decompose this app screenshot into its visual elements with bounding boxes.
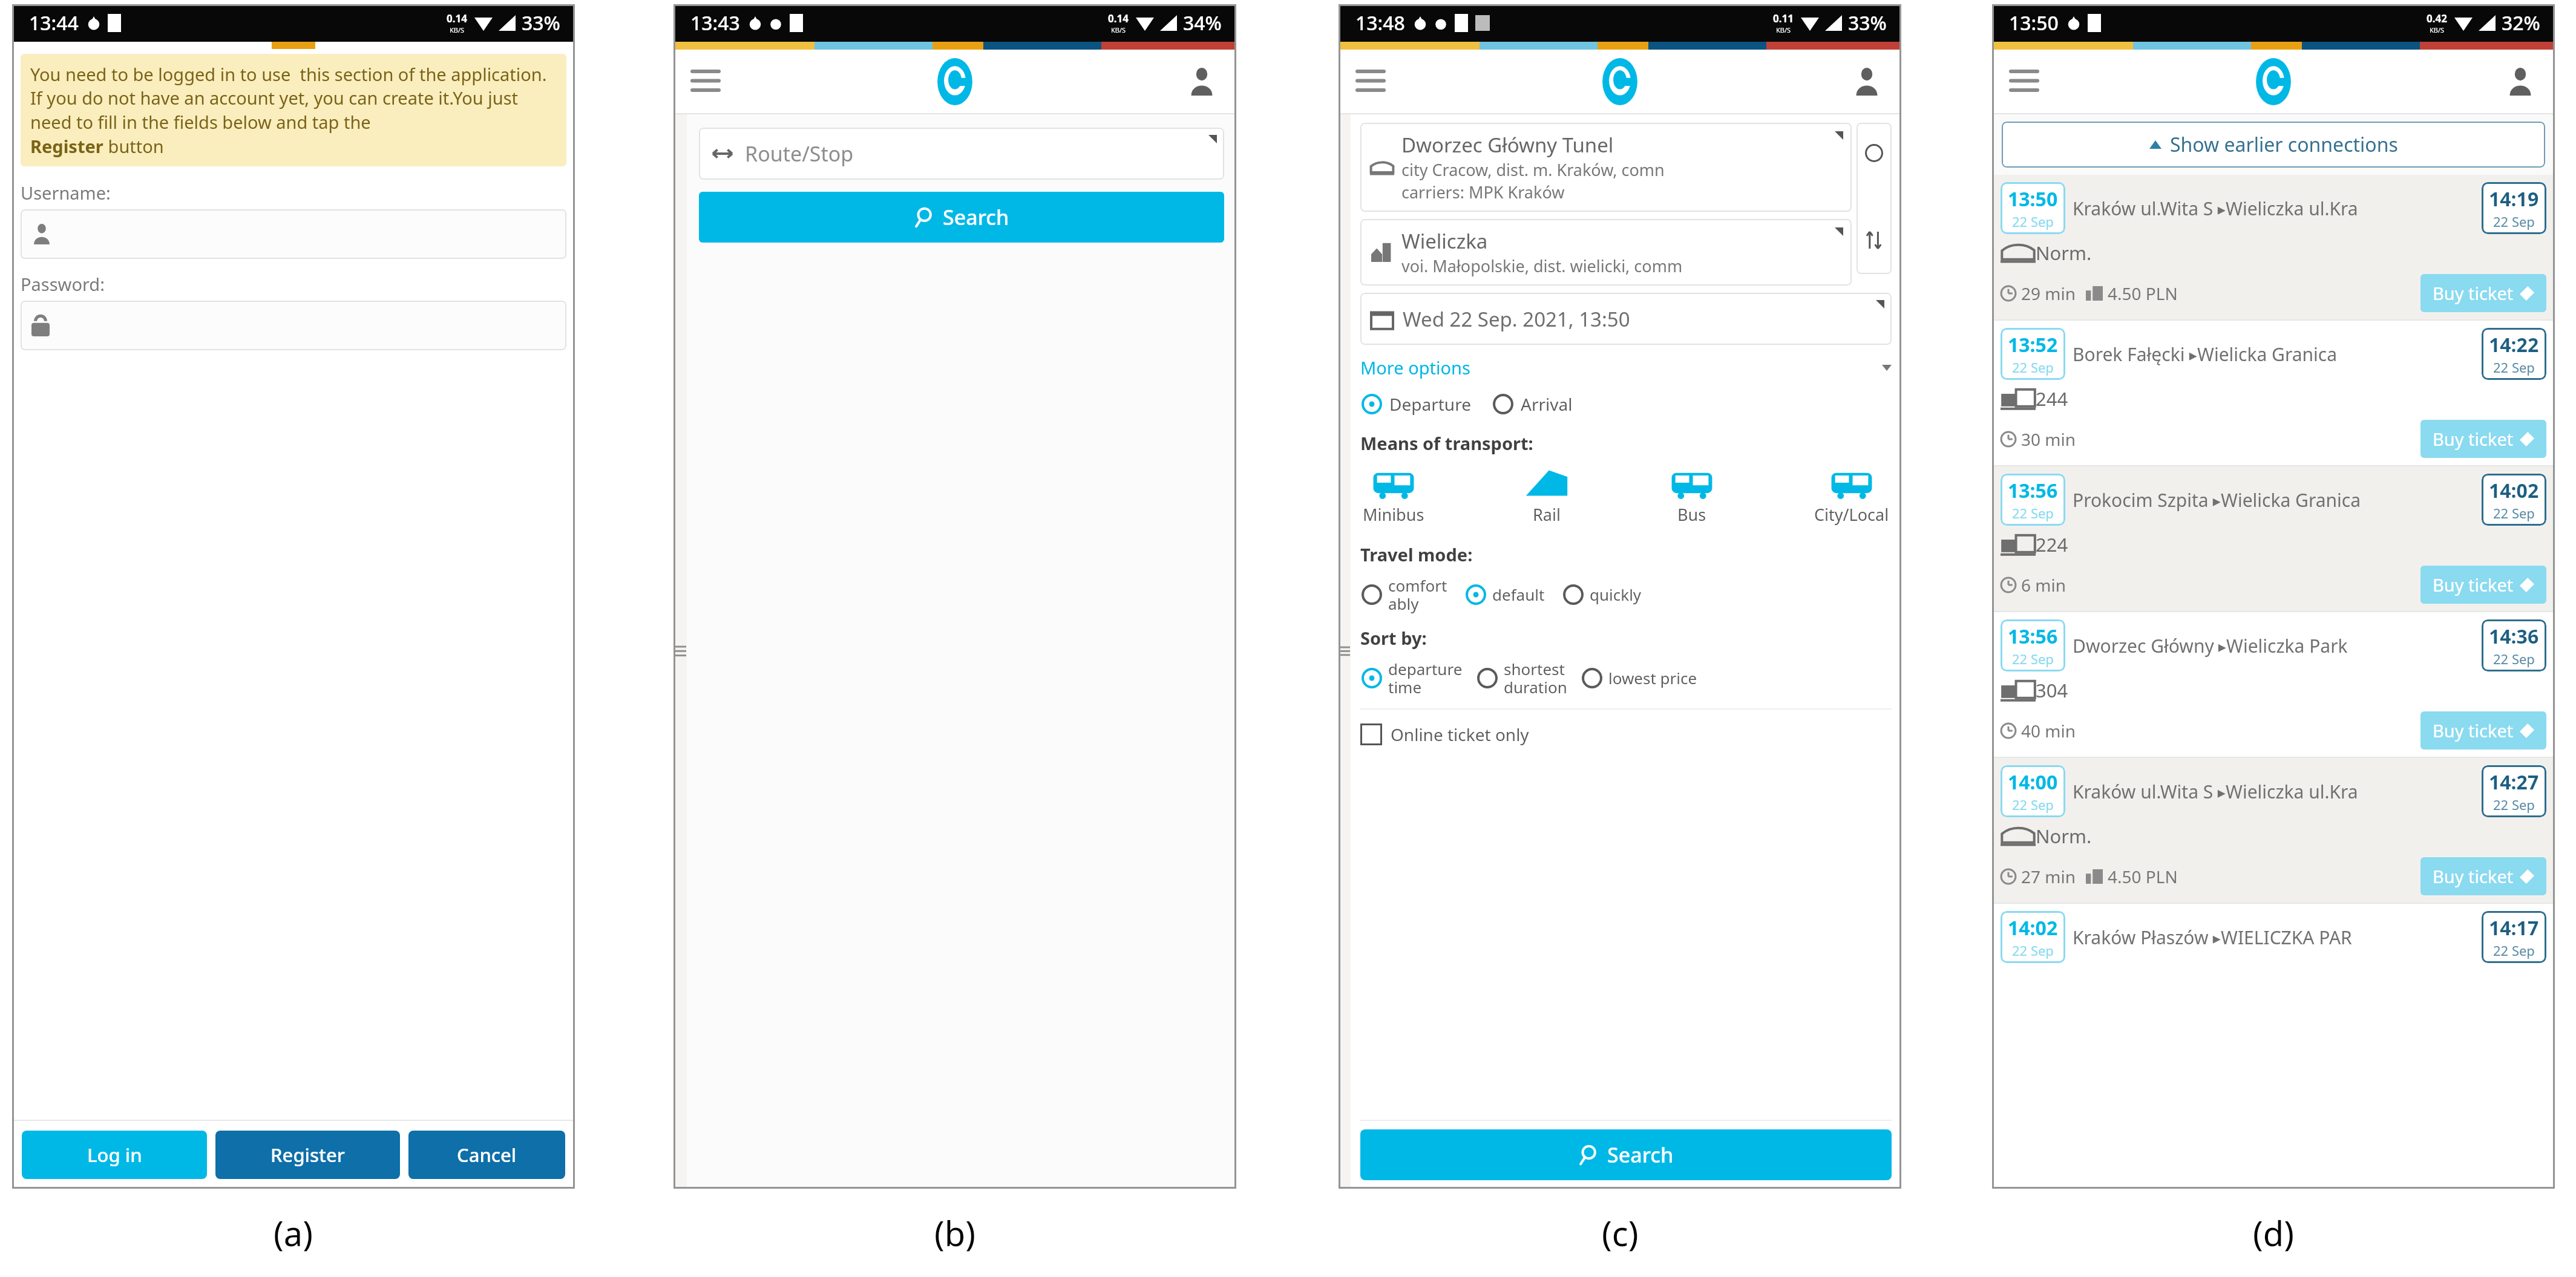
button[interactable]: Bus xyxy=(1667,465,1717,528)
button[interactable]: Register xyxy=(215,1131,400,1179)
button[interactable]: Home xyxy=(1593,54,1647,109)
staticText: 32% xyxy=(2502,10,2540,36)
staticText: 22 Sep xyxy=(2012,504,2054,522)
button[interactable]: Home xyxy=(928,54,982,109)
button[interactable]: Search xyxy=(1360,1129,1892,1180)
staticText: 6 min xyxy=(2021,573,2066,596)
staticText: 13:50 xyxy=(2008,186,2058,212)
button[interactable]: 13:56 xyxy=(1992,612,2555,757)
staticText: Kraków ul.Wita S xyxy=(2073,196,2214,221)
staticText: 33% xyxy=(522,10,560,36)
staticText: ▸ xyxy=(2214,198,2226,219)
staticText: City/Local xyxy=(1814,503,1889,526)
staticText: Wielicka Granica xyxy=(2197,342,2338,367)
button[interactable]: Buy ticket xyxy=(2420,274,2546,312)
staticText: ▸ xyxy=(2209,927,2221,948)
staticText: 22 Sep xyxy=(2012,650,2054,668)
staticText: 13:56 xyxy=(2008,477,2058,504)
button[interactable] xyxy=(1476,667,1499,690)
button[interactable]: More options xyxy=(1360,356,1892,379)
staticText: KB/S xyxy=(2430,25,2445,34)
button[interactable]: Menu xyxy=(687,63,724,100)
button[interactable] xyxy=(1360,667,1383,690)
staticText: (b) xyxy=(934,1210,976,1256)
button[interactable]: Log in xyxy=(22,1131,207,1179)
button[interactable]: Account xyxy=(1183,63,1221,100)
staticText: ▸ xyxy=(2185,344,2197,365)
staticText: KB/S xyxy=(450,25,465,34)
staticText: Borek Fałęcki xyxy=(2073,342,2185,367)
staticText: 22 Sep xyxy=(2493,212,2535,230)
button[interactable]: City/Local xyxy=(1812,465,1892,528)
staticText: Rail xyxy=(1533,503,1561,526)
staticText: lowest price xyxy=(1608,667,1697,688)
staticText: 22 Sep xyxy=(2493,504,2535,522)
button[interactable]: Rail xyxy=(1521,465,1572,528)
button[interactable]: Account xyxy=(1848,63,1886,100)
button[interactable]: Buy ticket xyxy=(2420,420,2546,458)
button[interactable]: Show earlier connections xyxy=(2002,122,2545,168)
staticText: button xyxy=(103,134,164,158)
staticText: Sort by: xyxy=(1360,626,1427,650)
staticText: Buy ticket xyxy=(2433,427,2514,451)
button[interactable] xyxy=(21,301,566,350)
staticText: 27 min xyxy=(2021,865,2076,888)
button[interactable] xyxy=(1360,583,1383,606)
button[interactable] xyxy=(1464,583,1487,606)
button[interactable]: Wed 22 Sep. 2021, 13:50 xyxy=(1360,293,1892,345)
staticText: Register xyxy=(30,134,103,158)
staticText: Norm. xyxy=(2036,240,2092,266)
staticText: (c) xyxy=(1602,1210,1639,1256)
staticText: 14:02 xyxy=(2008,915,2058,941)
button[interactable]: Cancel xyxy=(408,1131,565,1179)
button[interactable]: Wieliczka xyxy=(1360,219,1852,286)
button[interactable]: Buy ticket xyxy=(2420,857,2546,895)
staticText: 22 Sep xyxy=(2493,358,2535,376)
button[interactable]: Menu xyxy=(2005,63,2043,100)
staticText: Dworzec Główny Tunel xyxy=(1401,131,1614,158)
button[interactable]: Buy ticket xyxy=(2420,711,2546,750)
button[interactable]: Home xyxy=(2246,54,2301,109)
button[interactable]: Buy ticket xyxy=(2420,566,2546,604)
staticText: Minibus xyxy=(1363,503,1424,526)
staticText: 22 Sep xyxy=(2012,358,2054,376)
button[interactable]: 14:00 xyxy=(1992,758,2555,903)
staticText: 13:48 xyxy=(1355,10,1405,36)
button[interactable] xyxy=(1581,667,1604,690)
button[interactable]: Search xyxy=(699,192,1224,243)
button[interactable] xyxy=(1360,393,1383,416)
staticText: Cancel xyxy=(457,1142,517,1168)
button[interactable]: Menu xyxy=(1352,63,1389,100)
staticText: 13:56 xyxy=(2008,623,2058,650)
button[interactable]: Account xyxy=(2502,63,2539,100)
button[interactable]: 13:56 xyxy=(1992,466,2555,611)
staticText: ▸ xyxy=(2209,489,2221,511)
staticText: Username: xyxy=(21,181,111,204)
button[interactable] xyxy=(1492,393,1515,416)
button[interactable]: Minibus xyxy=(1360,465,1427,528)
button[interactable]: 13:50 xyxy=(1992,175,2555,319)
button[interactable]: Online ticket only xyxy=(1360,723,1529,746)
staticText: 22 Sep xyxy=(2493,795,2535,814)
staticText: Online ticket only xyxy=(1391,723,1529,746)
staticText: Wielicka Granica xyxy=(2221,488,2361,512)
staticText: 0.11 xyxy=(1773,11,1794,25)
button[interactable]: Dworzec Główny Tunel xyxy=(1360,123,1852,212)
staticText: 29 min xyxy=(2021,282,2076,305)
staticText: 34% xyxy=(1183,10,1222,36)
button[interactable]: Route/Stop xyxy=(699,128,1224,180)
staticText: Buy ticket xyxy=(2433,281,2514,305)
button[interactable] xyxy=(21,209,566,259)
button[interactable]: 13:52 xyxy=(1992,321,2555,465)
staticText: KB/S xyxy=(1776,25,1791,34)
staticText: Kraków Płaszów xyxy=(2073,925,2209,950)
staticText: 13:52 xyxy=(2008,331,2058,358)
button[interactable] xyxy=(1562,583,1585,606)
staticText: 14:00 xyxy=(2008,769,2058,795)
staticText: 14:22 xyxy=(2489,331,2539,358)
staticText: 224 xyxy=(2036,532,2068,557)
button[interactable]: Swap stops xyxy=(1857,123,1892,274)
staticText: (a) xyxy=(274,1210,313,1256)
staticText: Wieliczka ul.Kra xyxy=(2226,779,2358,804)
staticText: 14:02 xyxy=(2489,477,2539,504)
